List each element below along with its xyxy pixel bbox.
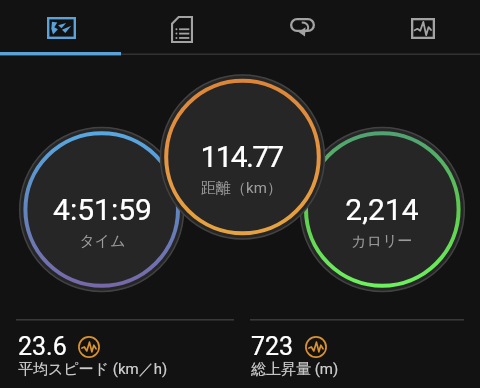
staticText: 4:51:59 — [53, 192, 152, 227]
staticText: カロリー — [351, 232, 413, 251]
button[interactable]: 114.77 — [156, 107, 326, 207]
button[interactable]: Chart — [360, 0, 480, 54]
button[interactable]: 723 — [251, 332, 339, 380]
staticText: 23.6 — [18, 332, 67, 361]
staticText: 平均スピード (km／h) — [18, 360, 168, 379]
button[interactable]: Summary — [120, 0, 240, 54]
button[interactable]: Laps — [240, 0, 360, 54]
staticText: 総上昇量 (m) — [251, 360, 339, 379]
staticText: 2,214 — [345, 192, 419, 227]
staticText: 114.77 — [200, 139, 283, 174]
button[interactable]: 4:51:59 — [17, 160, 187, 260]
button[interactable]: Map — [0, 0, 120, 54]
staticText: 723 — [251, 332, 294, 361]
button[interactable]: 23.6 — [18, 332, 168, 380]
button[interactable]: 2,214 — [297, 160, 467, 260]
staticText: タイム — [79, 232, 126, 251]
staticText: 距離（km） — [201, 179, 282, 198]
